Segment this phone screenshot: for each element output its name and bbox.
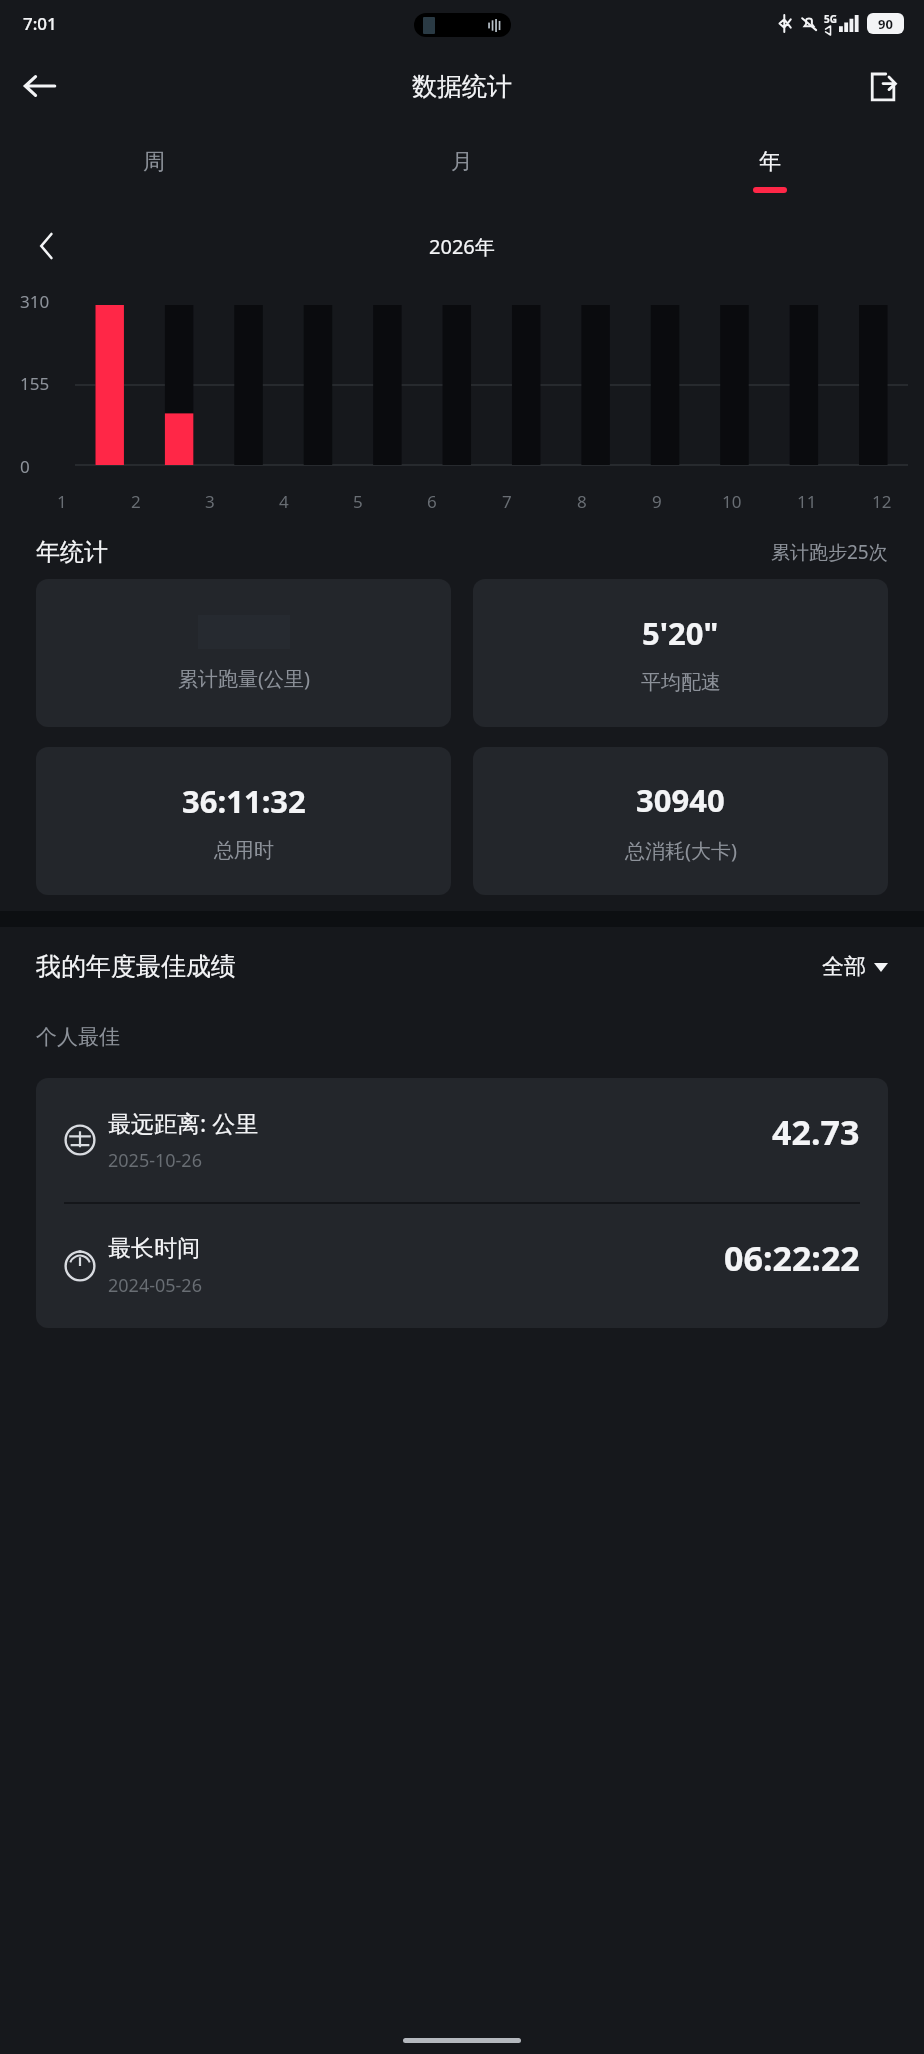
staticText: 月 [451,148,473,176]
button[interactable]: 最远距离: 公里 [36,1078,888,1202]
staticText: 310 [20,290,50,313]
staticText: 5G [824,12,837,26]
button[interactable]: 36:11:32 [36,747,451,895]
staticText: 总用时 [214,838,274,863]
button[interactable]: Back [10,56,70,116]
staticText: 2025-10-26 [108,1148,202,1173]
staticText: 11 [797,490,817,513]
staticText: 7:01 [23,12,57,35]
staticText: 我的年度最佳成绩 [36,951,236,982]
staticText: 9 [652,490,662,513]
button[interactable]: Previous year [20,220,72,272]
staticText: 2 [131,490,141,513]
staticText: 90 [878,15,893,33]
button[interactable]: 最长时间 [36,1204,888,1328]
button[interactable]: 全部 [822,953,888,981]
staticText: 36:11:32 [182,780,306,822]
staticText: 最远距离: 公里 [108,1107,259,1138]
staticText: 2026年 [429,233,495,260]
staticText: 10 [722,490,742,513]
staticText: 周 [143,148,165,176]
staticText: 155 [20,372,50,395]
button[interactable]: 年 [616,125,924,215]
staticText: 3 [205,490,215,513]
button[interactable]: 30940 [473,747,888,895]
staticText: 累计跑量(公里) [178,665,310,692]
staticText: 7 [502,490,512,513]
staticText: 8 [577,490,587,513]
staticText: 4 [279,490,289,513]
button[interactable]: Share [852,56,912,116]
staticText: 12 [872,490,892,513]
button[interactable]: 周 [0,125,308,215]
staticText: 数据统计 [412,71,512,102]
button[interactable]: 月 [308,125,616,215]
staticText: 2024-05-26 [108,1273,202,1298]
staticText: 年统计 [36,537,108,567]
staticText: 个人最佳 [36,1024,120,1050]
staticText: 平均配速 [641,670,721,695]
staticText: 全部 [822,953,866,981]
staticText: 30940 [636,779,725,821]
staticText: 最长时间 [108,1234,200,1263]
staticText: 年 [759,148,781,176]
staticText: 总消耗(大卡) [625,837,737,864]
staticText: 06:22:22 [724,1235,860,1281]
button[interactable]: 5'20" [473,579,888,727]
staticText: 42.73 [772,1109,860,1155]
staticText: 1 [57,490,67,513]
staticText: 5'20" [642,612,719,654]
button[interactable]: 累计跑量(公里) [36,579,451,727]
staticText: 6 [427,490,437,513]
staticText: 0 [20,455,30,478]
staticText: 累计跑步25次 [771,539,888,565]
staticText: 5 [353,490,363,513]
